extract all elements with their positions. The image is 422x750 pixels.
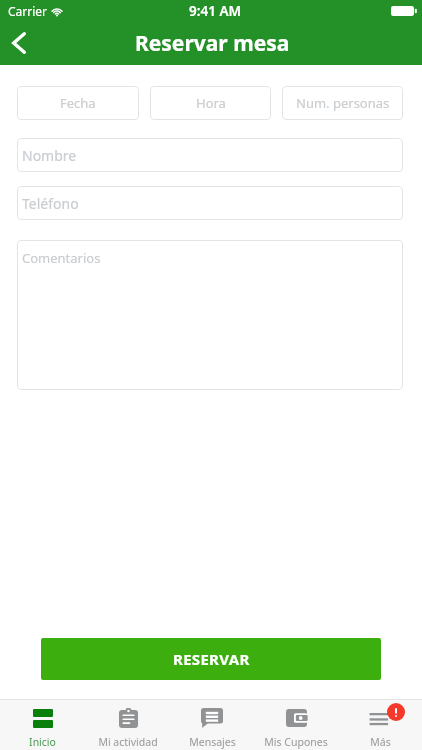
- staticText: RESERVAR: [173, 649, 250, 669]
- staticText: Mensajes: [189, 735, 236, 749]
- staticText: Carrier: [8, 3, 48, 19]
- button[interactable]: Mensajes: [170, 699, 254, 750]
- staticText: Hora: [196, 94, 226, 112]
- button[interactable]: Más: [338, 699, 422, 750]
- staticText: Inicio: [29, 735, 56, 749]
- button[interactable]: Mis Cupones: [254, 699, 338, 750]
- staticText: Reservar mesa: [135, 29, 290, 58]
- button[interactable]: Nombre: [17, 138, 403, 172]
- staticText: Más: [370, 735, 391, 749]
- button[interactable]: Comentarios: [17, 240, 403, 390]
- button[interactable]: Hora: [150, 86, 271, 120]
- button[interactable]: Fecha: [17, 86, 139, 120]
- staticText: Mi actividad: [98, 735, 158, 749]
- staticText: Fecha: [60, 94, 96, 112]
- staticText: 9:41 AM: [189, 2, 242, 20]
- button[interactable]: Teléfono: [17, 186, 403, 220]
- staticText: Comentarios: [22, 249, 101, 267]
- staticText: Mis Cupones: [264, 735, 328, 749]
- button[interactable]: RESERVAR: [41, 638, 381, 680]
- button[interactable]: Mi actividad: [85, 699, 170, 750]
- staticText: Teléfono: [22, 194, 79, 213]
- staticText: Nombre: [22, 146, 77, 165]
- staticText: Num. personas: [296, 94, 390, 112]
- button[interactable]: Num. personas: [282, 86, 403, 120]
- button[interactable]: Inicio: [0, 699, 85, 750]
- button[interactable]: Back: [0, 21, 41, 65]
